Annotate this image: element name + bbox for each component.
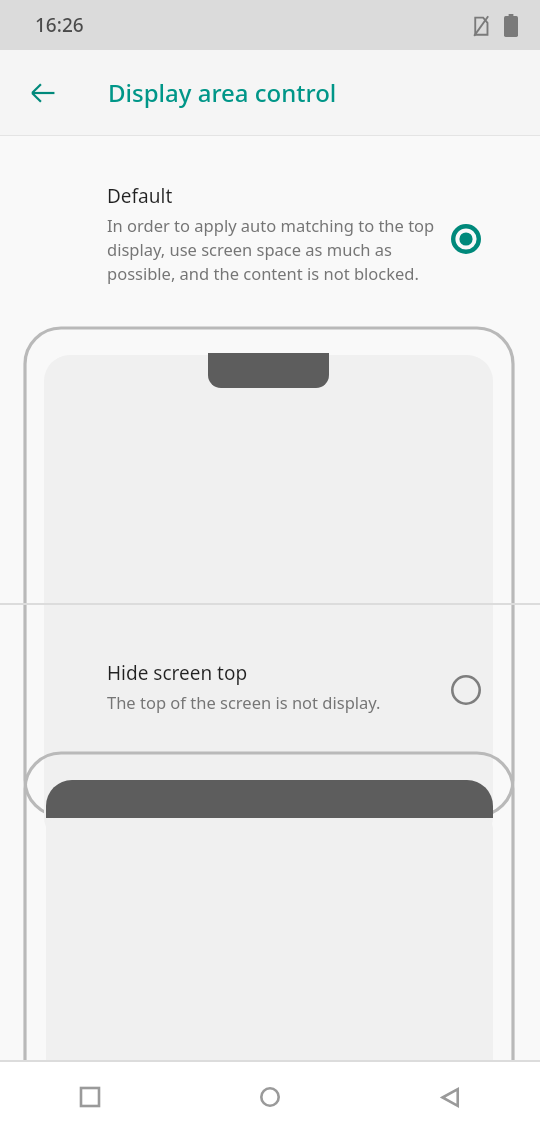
staticText: Default: [107, 183, 173, 209]
button[interactable]: Recents: [0, 1062, 180, 1132]
button[interactable]: Default: [0, 136, 540, 603]
staticText: The top of the screen is not display.: [107, 691, 381, 713]
staticText: In order to apply auto matching to the t…: [107, 214, 452, 285]
button[interactable]: Back: [19, 69, 67, 117]
staticText: Display area control: [108, 76, 337, 109]
button[interactable]: Hide screen top: [0, 605, 540, 1060]
staticText: Hide screen top: [107, 660, 248, 686]
button[interactable]: Home: [180, 1062, 360, 1132]
staticText: 16:26: [35, 12, 84, 38]
button[interactable]: Hide screen top: [444, 668, 488, 712]
button[interactable]: Back: [360, 1062, 540, 1132]
button[interactable]: Default selected: [444, 217, 488, 261]
